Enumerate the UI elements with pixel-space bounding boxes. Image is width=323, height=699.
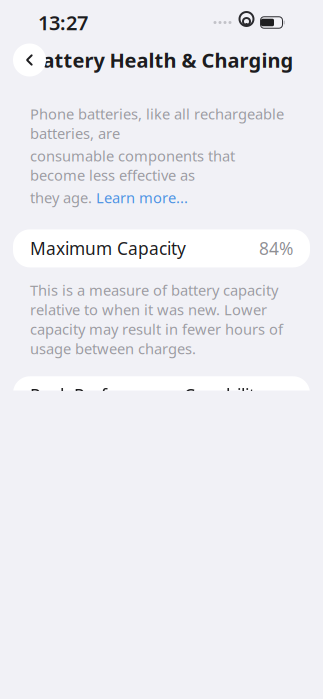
staticText: Learn more... bbox=[96, 188, 188, 207]
staticText: Peak Performance Capability bbox=[30, 384, 264, 407]
staticText: Battery Health & Charging bbox=[29, 47, 293, 73]
button[interactable]: Back bbox=[13, 43, 46, 76]
button[interactable]: Maximum Capacity bbox=[13, 229, 310, 267]
staticText: Maximum Capacity bbox=[30, 237, 186, 260]
button[interactable]: Peak Performance Capability bbox=[13, 376, 310, 414]
staticText: This is a measure of battery capacity re… bbox=[30, 280, 283, 358]
staticText: 84% bbox=[259, 237, 293, 260]
staticText: 13:27 bbox=[38, 9, 88, 36]
staticText: they age. bbox=[30, 188, 96, 207]
staticText: consumable components that become less e… bbox=[30, 146, 235, 185]
button[interactable]: Learn more... bbox=[96, 188, 188, 207]
staticText: Phone batteries, like all rechargeable b… bbox=[30, 104, 284, 143]
